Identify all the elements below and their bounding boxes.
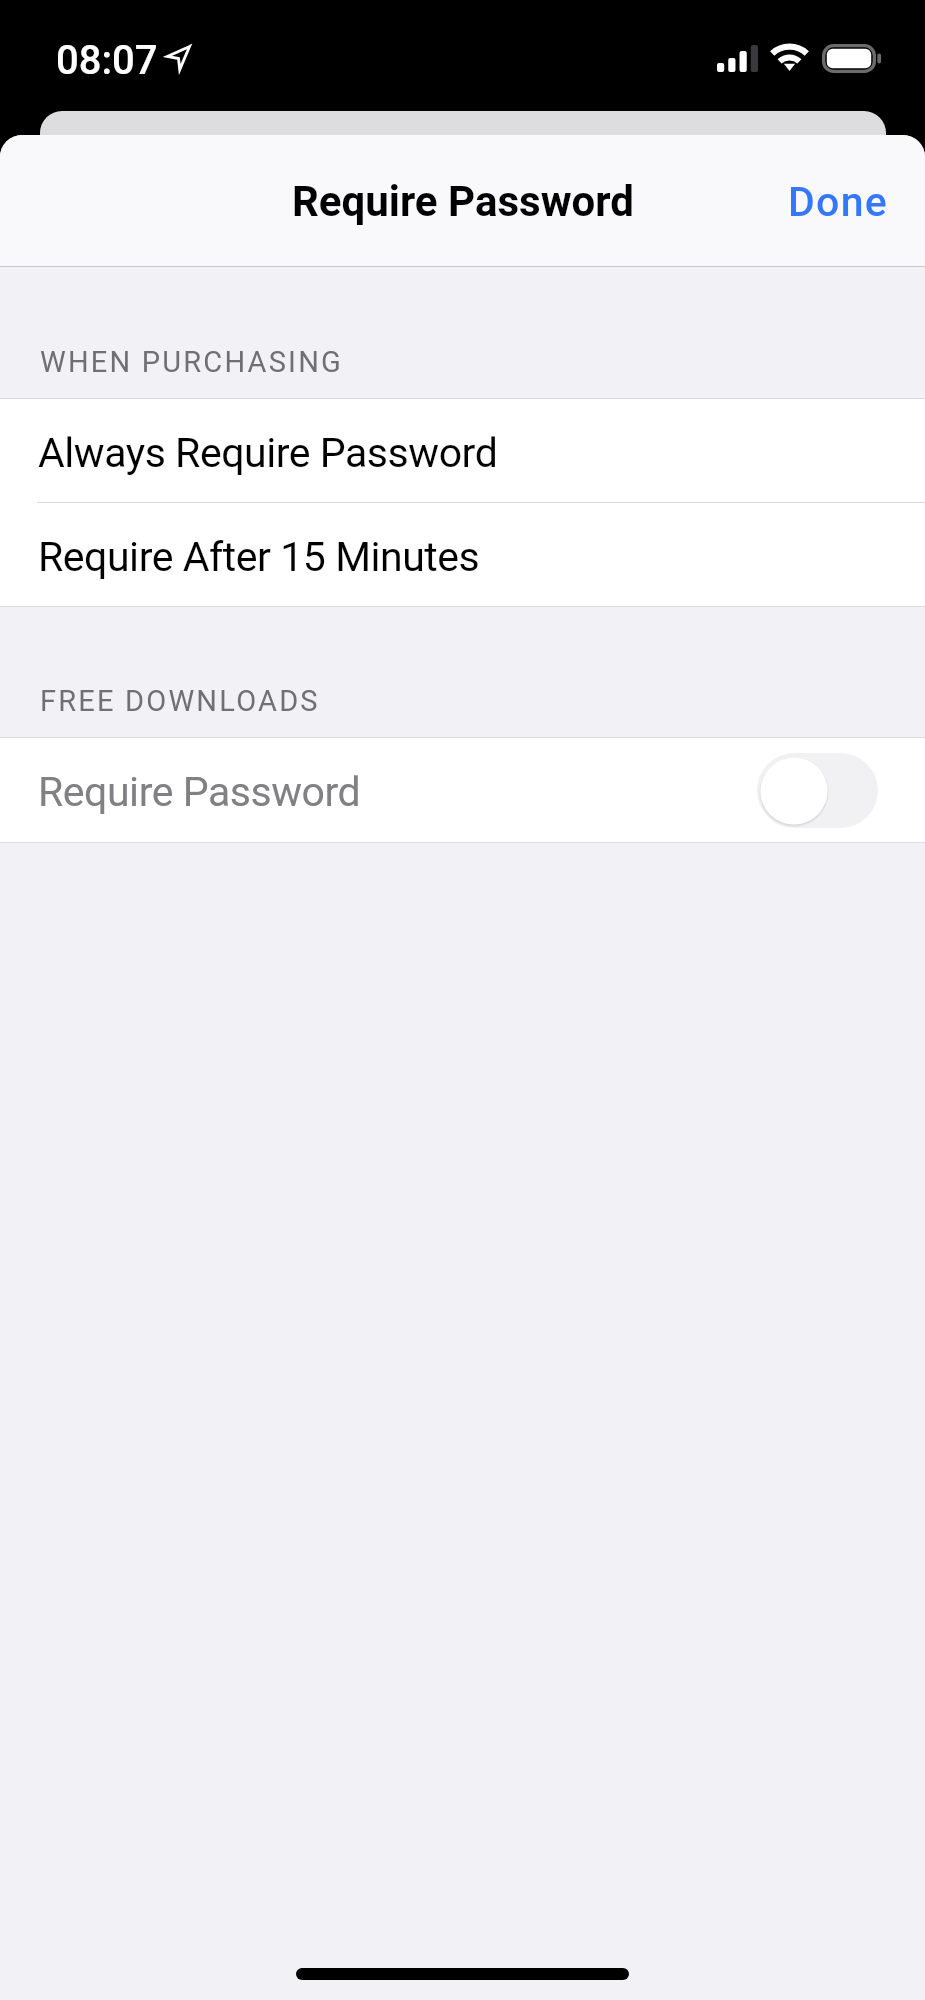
button[interactable]: Always Require Password: [0, 399, 925, 502]
staticText: Done: [788, 178, 889, 226]
staticText: Require After 15 Minutes: [38, 533, 480, 581]
staticText: Always Require Password: [38, 429, 498, 477]
button[interactable]: Require Password: [0, 738, 925, 842]
staticText: Require Password: [292, 177, 634, 226]
staticText: Require Password: [38, 768, 361, 816]
staticText: FREE DOWNLOADS: [40, 684, 320, 718]
button[interactable]: Require Password toggle, off: [757, 753, 878, 828]
button[interactable]: Require After 15 Minutes: [0, 503, 925, 606]
staticText: 08:07: [56, 37, 158, 84]
staticText: WHEN PURCHASING: [40, 345, 344, 379]
button[interactable]: Done: [751, 149, 925, 253]
